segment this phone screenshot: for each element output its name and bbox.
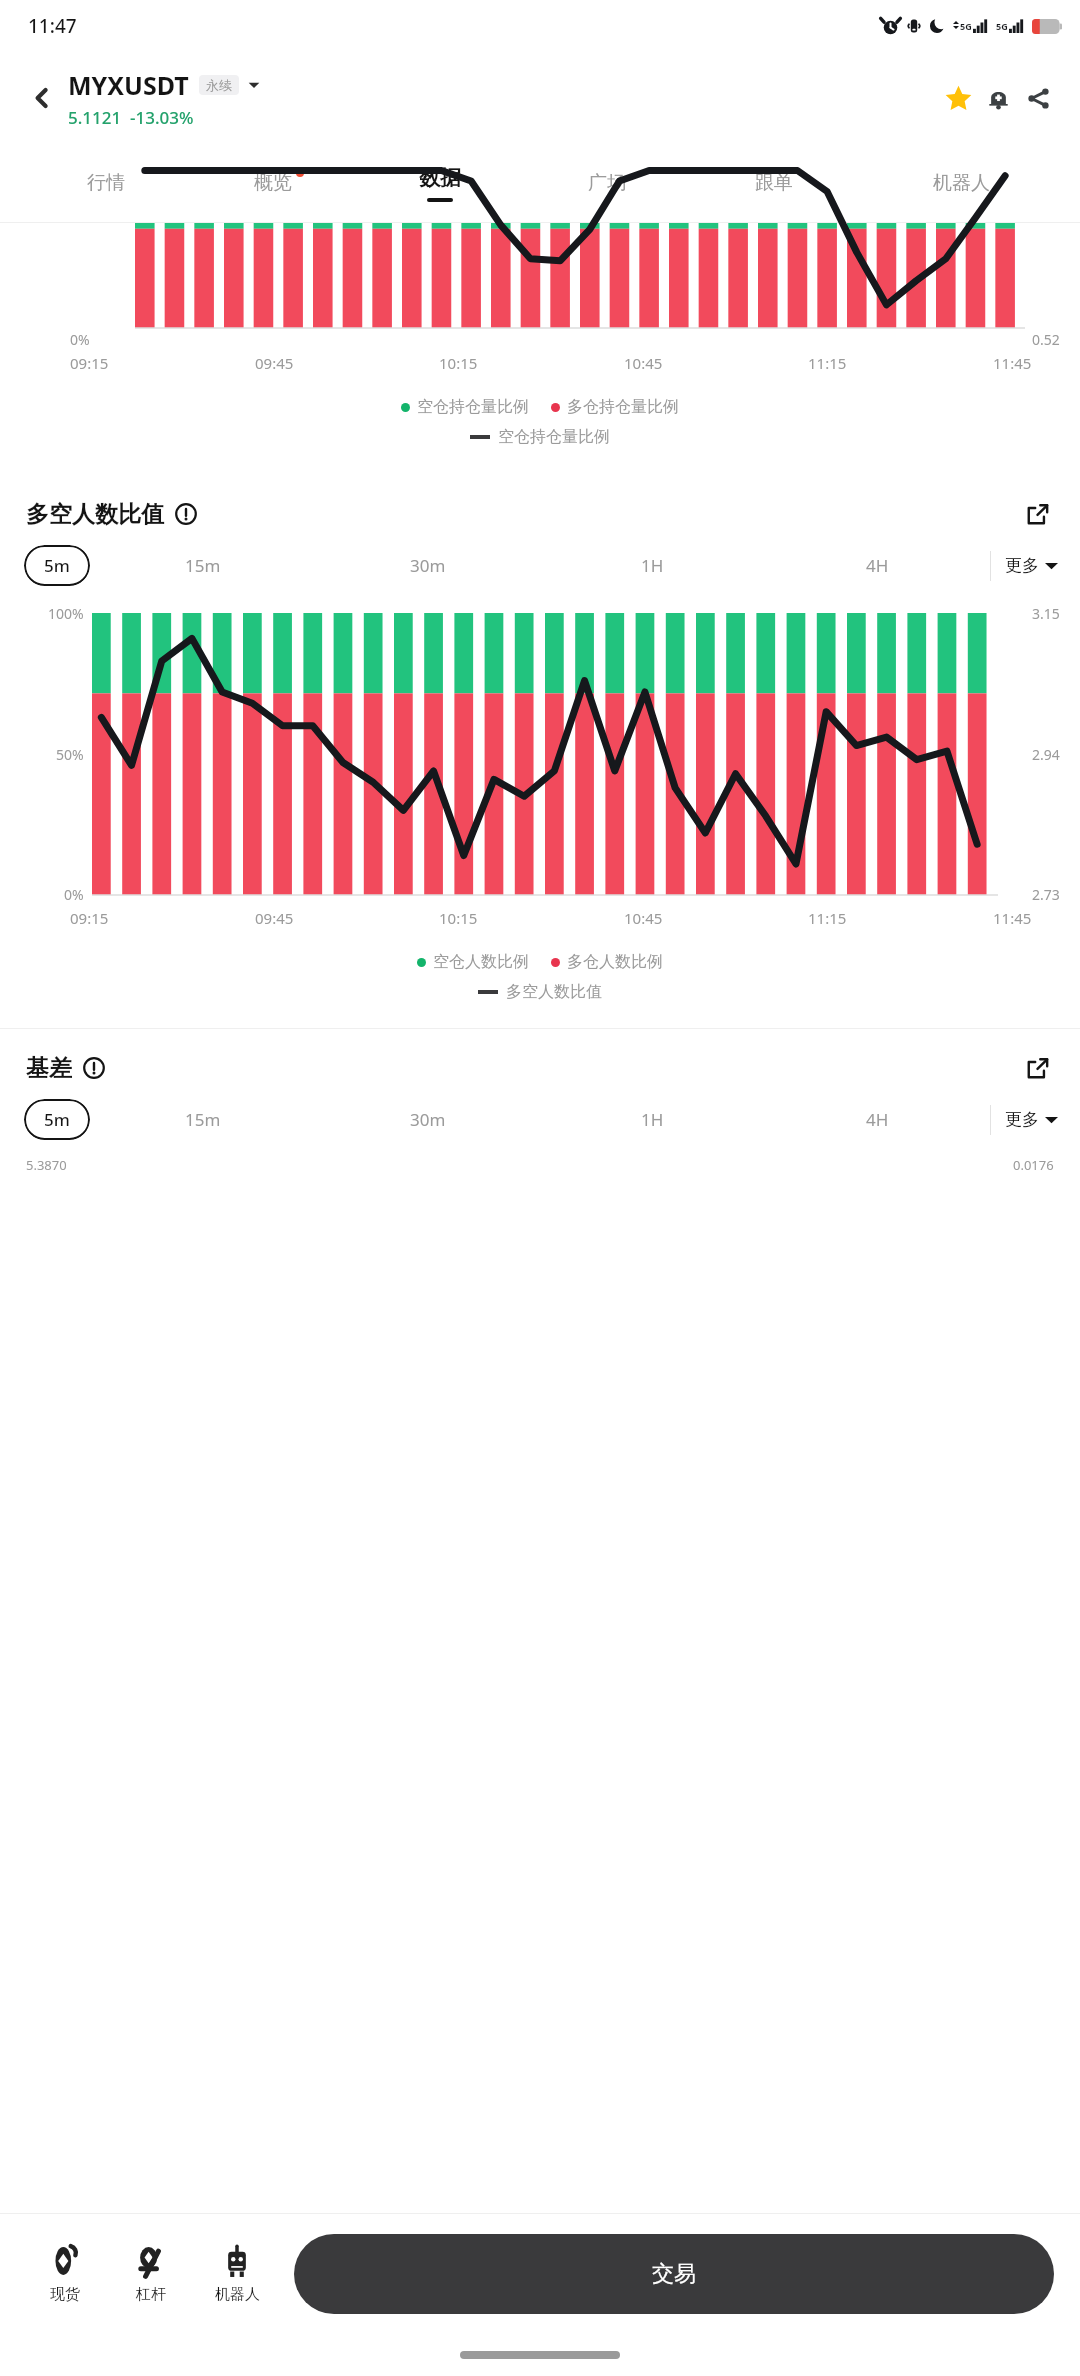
- staticText: 11:45: [993, 353, 1032, 373]
- staticText: 杠杆: [136, 2285, 166, 2304]
- staticText: 11:15: [808, 353, 847, 373]
- staticText: 09:15: [70, 908, 109, 928]
- button[interactable]: 机器人: [857, 144, 1066, 222]
- staticText: MYXUSDT: [68, 68, 189, 102]
- staticText: 30m: [410, 1108, 446, 1131]
- button[interactable]: 15m: [90, 554, 315, 577]
- button[interactable]: Alert: [978, 78, 1018, 118]
- button[interactable]: 1H: [540, 554, 765, 577]
- staticText: 11:47: [28, 13, 77, 39]
- staticText: 4H: [866, 1108, 889, 1131]
- staticText: 空仓人数比例: [433, 952, 529, 972]
- staticText: 10:45: [624, 353, 663, 373]
- staticText: 11:45: [993, 908, 1032, 928]
- button[interactable]: 交易: [294, 2234, 1054, 2314]
- staticText: 09:15: [70, 353, 109, 373]
- staticText: 5G: [996, 20, 1008, 32]
- staticText: 10:45: [624, 908, 663, 928]
- staticText: 5m: [44, 554, 70, 577]
- staticText: 多仓人数比例: [567, 952, 663, 972]
- staticText: 0.52: [1032, 330, 1060, 349]
- staticText: 1H: [641, 1108, 664, 1131]
- button[interactable]: 杠杆: [108, 2245, 194, 2304]
- button[interactable]: 4H: [765, 1108, 990, 1131]
- staticText: 概览: [254, 171, 292, 195]
- staticText: 5m: [44, 1108, 70, 1131]
- button[interactable]: Expand: [1020, 497, 1054, 531]
- button[interactable]: 广场: [523, 144, 690, 222]
- button[interactable]: Info: [81, 1055, 107, 1081]
- button[interactable]: 数据: [356, 144, 523, 222]
- button[interactable]: Info: [173, 501, 199, 527]
- staticText: 多仓持仓量比例: [567, 397, 679, 417]
- staticText: 0%: [70, 330, 90, 349]
- staticText: 机器人: [933, 171, 990, 195]
- staticText: 现货: [50, 2285, 80, 2304]
- staticText: 多空人数比值: [26, 500, 164, 529]
- button[interactable]: 15m: [90, 1108, 315, 1131]
- staticText: 10:15: [439, 908, 478, 928]
- button[interactable]: 现货: [22, 2245, 108, 2304]
- staticText: 09:45: [255, 908, 294, 928]
- staticText: 09:45: [255, 353, 294, 373]
- button[interactable]: Expand: [1020, 1051, 1054, 1085]
- staticText: 交易: [652, 2260, 696, 2288]
- staticText: 广场: [588, 171, 626, 195]
- staticText: 10:15: [439, 353, 478, 373]
- button[interactable]: 机器人: [194, 2245, 280, 2304]
- staticText: 5G: [960, 20, 972, 32]
- staticText: 数据: [419, 165, 461, 191]
- staticText: 5.1121 -13.03%: [68, 106, 194, 129]
- button[interactable]: 30m: [315, 554, 540, 577]
- staticText: 30m: [410, 554, 446, 577]
- staticText: 更多: [1005, 1109, 1039, 1130]
- button[interactable]: Select contract: [247, 78, 261, 92]
- button[interactable]: 行情: [22, 144, 189, 222]
- staticText: 机器人: [215, 2285, 260, 2304]
- staticText: 2.94: [1032, 745, 1060, 764]
- staticText: 15m: [185, 1108, 221, 1131]
- staticText: 空仓持仓量比例: [498, 427, 610, 447]
- staticText: 永续: [206, 77, 232, 93]
- button[interactable]: 概览: [189, 144, 356, 222]
- staticText: 5.3870: [26, 1156, 67, 1174]
- staticText: 0.0176: [1013, 1156, 1054, 1174]
- button[interactable]: 4H: [765, 554, 990, 577]
- staticText: 4H: [866, 554, 889, 577]
- button[interactable]: 5m: [24, 1099, 90, 1140]
- button[interactable]: 跟单: [690, 144, 857, 222]
- staticText: 行情: [87, 171, 125, 195]
- staticText: 更多: [1005, 555, 1039, 576]
- button[interactable]: 30m: [315, 1108, 540, 1131]
- staticText: 0%: [64, 885, 84, 904]
- staticText: 3.15: [1032, 604, 1060, 623]
- button[interactable]: 永续: [206, 77, 232, 93]
- staticText: 多空人数比值: [506, 982, 602, 1002]
- staticText: 15m: [185, 554, 221, 577]
- button[interactable]: 更多: [1005, 1109, 1058, 1130]
- button[interactable]: Back: [22, 78, 62, 118]
- staticText: 50%: [56, 745, 84, 764]
- staticText: 基差: [26, 1054, 72, 1083]
- button[interactable]: Share: [1018, 78, 1058, 118]
- staticText: 100%: [48, 604, 84, 623]
- button[interactable]: 1H: [540, 1108, 765, 1131]
- staticText: 2.73: [1032, 885, 1060, 904]
- button[interactable]: 更多: [1005, 555, 1058, 576]
- button[interactable]: 5m: [24, 545, 90, 586]
- staticText: 1H: [641, 554, 664, 577]
- button[interactable]: Favorite: [938, 78, 978, 118]
- staticText: 11:15: [808, 908, 847, 928]
- staticText: 跟单: [755, 171, 793, 195]
- staticText: 空仓持仓量比例: [417, 397, 529, 417]
